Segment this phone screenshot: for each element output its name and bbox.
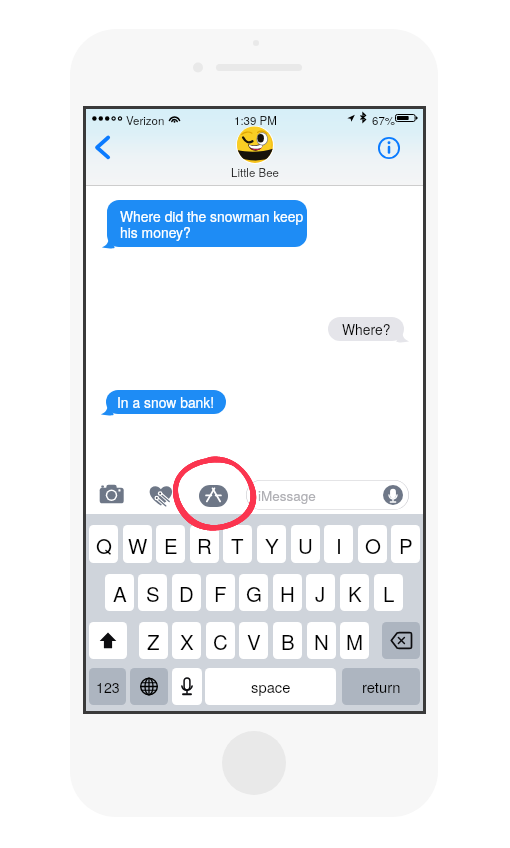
button[interactable]: W (123, 525, 152, 563)
staticText: E (164, 530, 178, 559)
staticText: Y (265, 530, 279, 559)
staticText: P (399, 530, 413, 559)
button[interactable]: Shift (89, 622, 127, 659)
staticText: K (348, 578, 362, 607)
button[interactable]: N (307, 622, 336, 659)
staticText: T (231, 530, 244, 559)
staticText: O (365, 530, 381, 559)
button[interactable]: Z (139, 622, 168, 659)
button[interactable]: O (358, 525, 387, 563)
button[interactable]: B (273, 622, 302, 659)
staticText: return (362, 676, 401, 697)
staticText: U (298, 530, 313, 559)
staticText: M (346, 626, 364, 655)
button[interactable]: Back (86, 132, 124, 170)
button[interactable]: J (306, 574, 335, 611)
staticText: J (315, 578, 326, 607)
staticText: Where did the snowman keep his money? (120, 206, 304, 242)
staticText: H (280, 578, 295, 607)
button[interactable]: Delete (382, 622, 420, 659)
staticText: 67% (372, 112, 396, 128)
staticText: R (197, 530, 212, 559)
staticText: space (251, 676, 291, 697)
button[interactable]: M (340, 622, 369, 659)
staticText: C (213, 626, 228, 655)
staticText: X (180, 626, 194, 655)
button[interactable]: Switch keyboard (130, 668, 168, 705)
button[interactable]: C (206, 622, 235, 659)
staticText: 1:39 PM (234, 112, 277, 128)
staticText: 123 (96, 677, 120, 697)
button[interactable]: Digital Touch (147, 482, 177, 512)
staticText: F (214, 578, 227, 607)
button[interactable]: Details (376, 135, 402, 161)
button[interactable]: K (340, 574, 369, 611)
button[interactable]: R (190, 525, 219, 563)
staticText: G (246, 578, 262, 607)
staticText: L (383, 578, 395, 607)
button[interactable]: A (105, 574, 134, 611)
button[interactable]: Dictate (383, 485, 403, 505)
staticText: iMessage (258, 486, 316, 505)
staticText: D (179, 578, 194, 607)
staticText: B (281, 626, 295, 655)
button[interactable]: In a snow bank! (106, 390, 226, 414)
button[interactable]: T (223, 525, 252, 563)
button[interactable]: H (273, 574, 302, 611)
staticText: V (247, 626, 261, 655)
button[interactable]: return (342, 668, 420, 705)
staticText: I (336, 530, 342, 559)
staticText: N (314, 626, 329, 655)
button[interactable]: P (391, 525, 420, 563)
button[interactable]: Camera (99, 482, 131, 512)
button[interactable]: iMessage (246, 480, 409, 510)
button[interactable]: E (156, 525, 185, 563)
button[interactable]: X (172, 622, 201, 659)
button[interactable]: G (239, 574, 268, 611)
button[interactable]: D (172, 574, 201, 611)
button[interactable]: Where did the snowman keep his money? (107, 200, 307, 247)
staticText: In a snow bank! (117, 392, 215, 412)
staticText: A (113, 578, 127, 607)
button[interactable]: L (374, 574, 403, 611)
button[interactable]: U (291, 525, 320, 563)
staticText: W (128, 530, 148, 559)
button[interactable]: App Store (199, 485, 228, 507)
staticText: Q (96, 530, 112, 559)
button[interactable]: Where? (328, 317, 404, 341)
button[interactable]: Little Bee (231, 126, 279, 180)
button[interactable]: Y (257, 525, 286, 563)
button[interactable]: F (206, 574, 235, 611)
staticText: Z (147, 626, 160, 655)
staticText: S (146, 578, 160, 607)
button[interactable]: 123 (89, 668, 126, 705)
button[interactable]: Dictation (172, 668, 202, 705)
button[interactable]: V (239, 622, 268, 659)
staticText: Where? (342, 319, 391, 339)
button[interactable]: space (205, 668, 336, 705)
staticText: Verizon (126, 112, 165, 128)
button[interactable]: S (138, 574, 167, 611)
button[interactable]: I (324, 525, 353, 563)
button[interactable]: Q (89, 525, 118, 563)
staticText: Little Bee (231, 164, 279, 180)
